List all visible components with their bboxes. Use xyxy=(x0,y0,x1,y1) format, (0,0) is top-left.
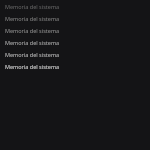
staticText: Memoria del sistema xyxy=(5,15,60,22)
staticText: Memoria del sistema xyxy=(5,27,60,34)
staticText: Memoria del sistema xyxy=(5,3,60,10)
staticText: Memoria del sistema xyxy=(5,51,60,58)
staticText: Memoria del sistema xyxy=(5,39,60,46)
staticText: Memoria del sistema xyxy=(5,63,60,70)
